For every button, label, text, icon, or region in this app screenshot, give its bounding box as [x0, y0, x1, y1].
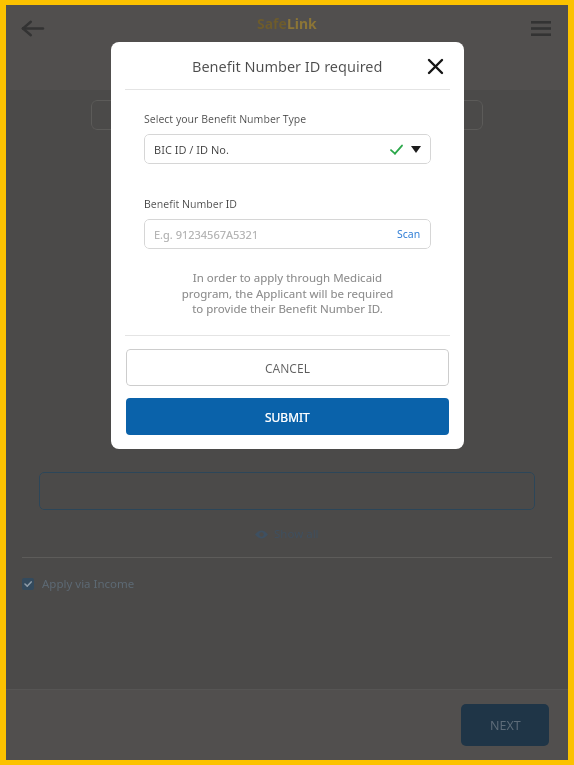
staticText: Apply via Income	[42, 576, 135, 592]
button[interactable]: BIC ID / ID No.	[144, 134, 431, 164]
staticText: SUBMIT	[265, 409, 310, 425]
staticText: E.g. 91234567A5321	[154, 227, 259, 242]
button[interactable]	[39, 472, 535, 510]
button[interactable]: NEXT	[461, 704, 549, 746]
staticText: Safe	[257, 14, 287, 33]
button[interactable]: Scan	[397, 227, 421, 241]
staticText: Link	[287, 14, 317, 33]
button[interactable]: CANCEL	[126, 349, 449, 386]
button[interactable]: SUBMIT	[126, 398, 449, 435]
button[interactable]: Back	[12, 8, 52, 48]
staticText: In order to apply through Medicaid progr…	[144, 270, 431, 316]
staticText: Benefit Number ID	[144, 197, 237, 211]
staticText: Show all	[274, 526, 319, 542]
button[interactable]: Close	[420, 51, 450, 81]
staticText: Select your Benefit Number Type	[144, 112, 307, 126]
button[interactable]: Search	[91, 100, 483, 130]
button[interactable]: Apply via Income	[22, 576, 135, 592]
button[interactable]: E.g. 91234567A5321	[144, 219, 431, 249]
staticText: CANCEL	[265, 360, 310, 376]
staticText: Scan	[397, 227, 421, 241]
staticText: NEXT	[490, 717, 521, 734]
staticText: BIC ID / ID No.	[154, 142, 229, 157]
staticText: Benefit Number ID required	[192, 56, 383, 76]
button[interactable]: Menu	[522, 9, 560, 47]
